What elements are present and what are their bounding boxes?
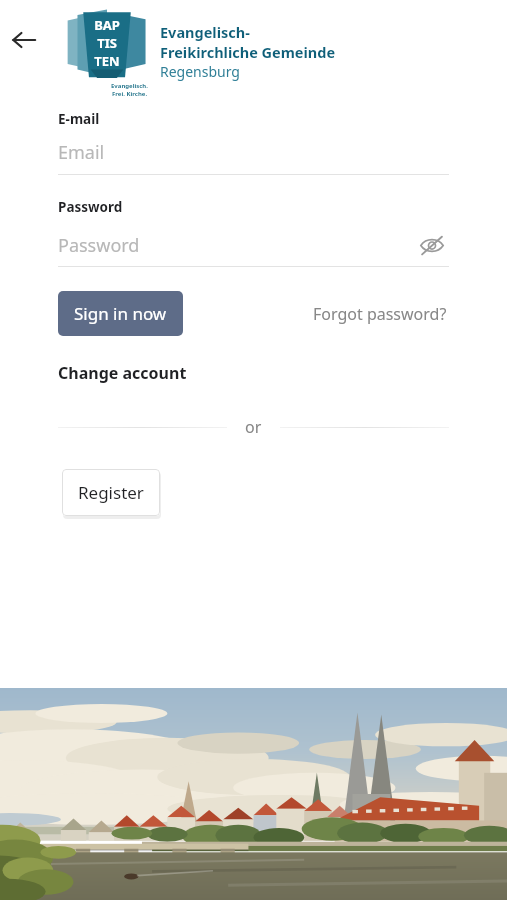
- button[interactable]: Change account: [58, 362, 187, 384]
- staticText: E-mail: [58, 110, 100, 128]
- staticText: Evangelisch.: [111, 82, 148, 90]
- staticText: or: [245, 416, 262, 438]
- button[interactable]: Sign in now: [58, 291, 183, 336]
- button[interactable]: Back: [0, 16, 48, 64]
- staticText: TIS: [97, 34, 117, 52]
- button[interactable]: Email: [58, 140, 449, 175]
- staticText: Frei. Kirche.: [112, 90, 148, 98]
- staticText: Forgot password?: [313, 303, 447, 325]
- staticText: Regensburg: [160, 62, 240, 81]
- staticText: Password: [58, 198, 123, 216]
- staticText: Change account: [58, 362, 187, 384]
- staticText: TEN: [94, 52, 120, 70]
- staticText: Email: [58, 140, 105, 165]
- button[interactable]: Forgot password?: [313, 303, 449, 325]
- button[interactable]: Show password: [415, 228, 449, 262]
- button[interactable]: Password: [58, 233, 415, 258]
- staticText: Freikirchliche Gemeinde: [160, 42, 336, 62]
- staticText: Register: [78, 481, 144, 504]
- staticText: Password: [58, 233, 140, 258]
- staticText: BAP: [94, 16, 120, 34]
- staticText: Sign in now: [74, 302, 167, 325]
- staticText: Evangelisch-: [160, 22, 250, 42]
- button[interactable]: Register: [62, 469, 160, 516]
